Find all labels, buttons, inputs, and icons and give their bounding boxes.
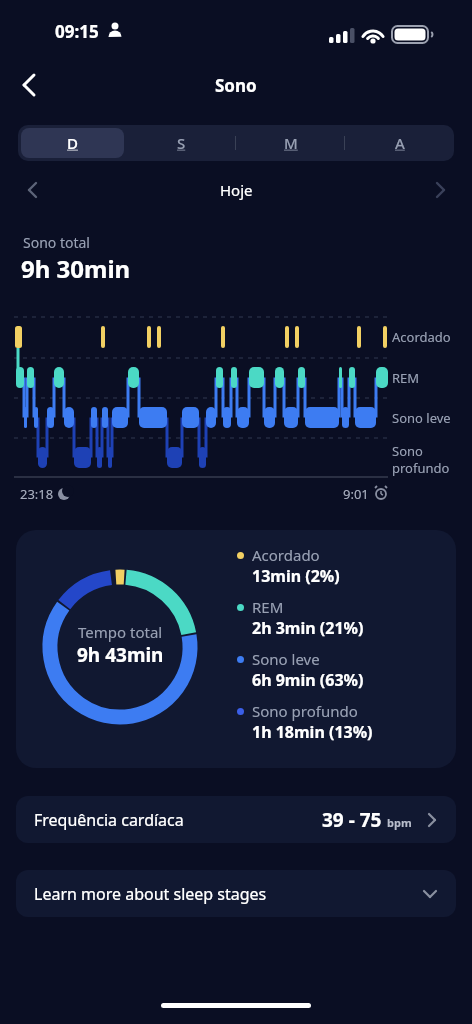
staticText: Hoje [220,180,253,200]
staticText: 39 - 75 [322,807,382,833]
button[interactable]: Frequência cardíaca [16,796,456,843]
staticText: S [177,133,186,153]
staticText: Frequência cardíaca [34,809,184,831]
staticText: 2h 3min (21%) [252,617,364,639]
button[interactable] [422,172,458,208]
staticText: bpm [387,815,412,830]
staticText: REM [392,369,420,387]
button[interactable]: M [239,128,342,158]
staticText: Sono profundo [392,442,450,477]
staticText: A [395,133,405,153]
staticText: 9h 43min [77,642,164,668]
staticText: Sono total [23,233,90,252]
staticText: 9h 30min [21,252,131,285]
staticText: Learn more about sleep stages [34,883,267,905]
staticText: M [284,133,298,153]
staticText: D [67,133,78,153]
staticText: Tempo total [78,622,163,642]
staticText: 09:15 [55,20,99,43]
staticText: 1h 18min (13%) [252,721,373,743]
staticText: REM [252,597,284,617]
staticText: Acordado [252,545,320,565]
staticText: 6h 9min (63%) [252,669,364,691]
staticText: Sono leve [252,649,320,669]
staticText: Sono leve [392,409,451,427]
button[interactable]: S [130,128,233,158]
button[interactable] [14,172,50,208]
button[interactable]: A [348,128,451,158]
button[interactable]: Learn more about sleep stages [16,870,456,917]
staticText: 9:01 [343,485,369,503]
staticText: 13min (2%) [252,565,340,587]
staticText: Sono [215,74,257,97]
button[interactable] [10,68,50,102]
staticText: Acordado [392,328,451,346]
staticText: Sono profundo [252,701,358,721]
button[interactable]: D [21,128,124,158]
staticText: 23:18 [20,485,54,503]
